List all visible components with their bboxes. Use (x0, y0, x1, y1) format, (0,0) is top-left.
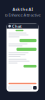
staticText: to Enhance Attractive (4, 12, 40, 18)
staticText: Ask the AI (12, 6, 32, 12)
staticText: Chat (12, 23, 22, 29)
